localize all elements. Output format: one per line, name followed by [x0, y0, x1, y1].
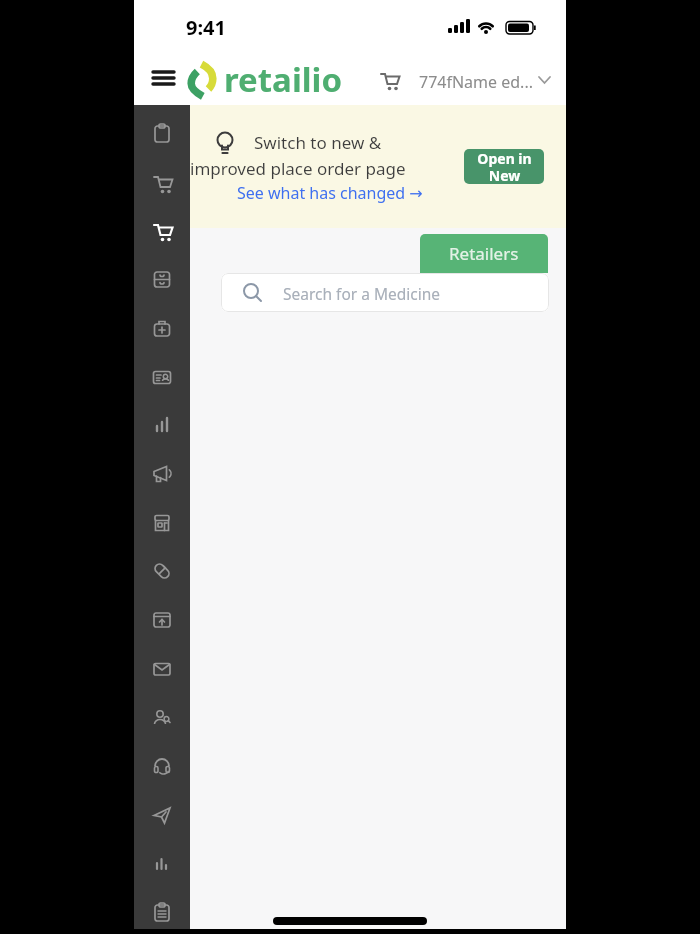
staticText: Search for a Medicine	[283, 283, 441, 304]
button[interactable]	[151, 853, 173, 875]
button[interactable]	[151, 609, 173, 631]
button[interactable]	[151, 560, 173, 582]
button[interactable]	[151, 706, 173, 728]
button[interactable]	[151, 512, 173, 534]
button[interactable]	[151, 122, 173, 144]
button[interactable]: Search for a Medicine	[221, 273, 549, 312]
button[interactable]	[151, 658, 173, 680]
button[interactable]	[151, 317, 173, 339]
staticText: 9:41	[186, 14, 226, 41]
button[interactable]	[151, 366, 173, 388]
button[interactable]: Open in New	[464, 149, 544, 184]
button[interactable]	[151, 171, 173, 193]
button[interactable]	[151, 268, 173, 290]
button[interactable]	[151, 414, 173, 436]
staticText: Retailers	[449, 242, 519, 265]
staticText: Open in New	[477, 149, 532, 184]
button[interactable]: See what has changed →	[237, 182, 423, 204]
button[interactable]	[151, 901, 173, 923]
staticText: improved place order page	[190, 157, 406, 180]
staticText: Switch to new &	[254, 131, 382, 154]
button[interactable]	[151, 463, 173, 485]
staticText: retailio	[224, 57, 343, 102]
button[interactable]	[151, 219, 173, 241]
button[interactable]	[153, 70, 175, 88]
button[interactable]: 774fName ed...	[419, 71, 533, 93]
button[interactable]	[151, 755, 173, 777]
button[interactable]	[151, 804, 173, 826]
button[interactable]: Retailers	[420, 234, 548, 273]
button[interactable]	[378, 68, 404, 94]
